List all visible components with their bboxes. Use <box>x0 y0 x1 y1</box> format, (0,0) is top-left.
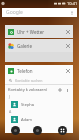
staticText: Google <box>6 9 23 16</box>
staticText: Telefon <box>17 68 33 74</box>
staticText: Stepha <box>21 102 35 107</box>
button[interactable]: Add contact <box>57 87 63 93</box>
staticText: Uhr + Wetter <box>17 29 45 35</box>
button[interactable]: Uhr + Wetter <box>5 25 73 38</box>
button[interactable]: Dismiss Galerie <box>65 43 71 49</box>
staticText: Galerie <box>17 43 33 49</box>
button[interactable]: Dismiss Telefon <box>65 68 71 74</box>
button[interactable]: Stepha <box>5 99 73 109</box>
button[interactable]: Adam <box>5 114 73 124</box>
staticText: Adam <box>21 117 32 122</box>
staticText: A <box>9 109 12 114</box>
button[interactable]: Browser <box>33 126 42 135</box>
staticText: Kontakte suchen <box>15 78 43 83</box>
button[interactable]: Camera <box>11 126 20 135</box>
button[interactable]: Dismiss Uhr + Wetter <box>65 29 71 35</box>
staticText: Kontakty k zobrazení <box>8 87 48 92</box>
staticText: 10:41 <box>67 1 78 6</box>
button[interactable]: Kontakte suchen <box>5 76 73 84</box>
button[interactable]: Telefon <box>5 65 73 76</box>
button[interactable]: More options <box>64 87 70 93</box>
staticText: J <box>9 94 10 99</box>
button[interactable]: Apps <box>58 126 67 135</box>
button[interactable]: Google <box>2 8 77 17</box>
button[interactable]: Galerie <box>5 39 73 62</box>
